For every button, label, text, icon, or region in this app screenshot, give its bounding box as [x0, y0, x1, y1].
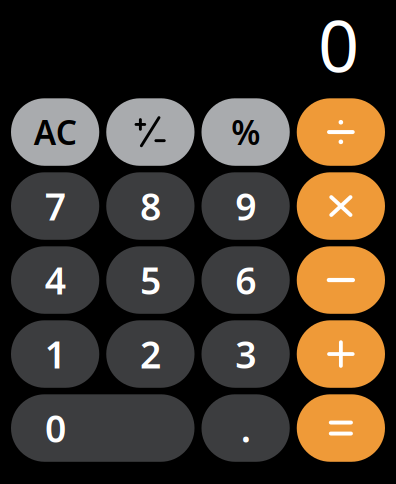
button[interactable]: Equals — [297, 394, 385, 462]
staticText: 9 — [235, 181, 256, 231]
staticText: AC — [34, 110, 77, 154]
staticText: 2 — [140, 329, 161, 379]
button[interactable]: Decimal point — [201, 394, 290, 462]
staticText: 7 — [45, 181, 66, 231]
button[interactable]: 7 — [11, 172, 99, 240]
button[interactable]: Plus — [297, 320, 385, 388]
button[interactable]: 8 — [106, 172, 194, 240]
button[interactable]: 4 — [11, 246, 99, 314]
staticText: 3 — [235, 329, 256, 379]
staticText: 5 — [140, 255, 161, 305]
button[interactable]: Plus minus — [106, 98, 194, 166]
button[interactable]: 6 — [201, 246, 290, 314]
staticText: 8 — [140, 181, 161, 231]
button[interactable]: 9 — [201, 172, 290, 240]
staticText: 6 — [235, 255, 256, 305]
button[interactable]: All clear — [11, 98, 99, 166]
button[interactable]: Percent — [201, 98, 290, 166]
button[interactable]: 2 — [106, 320, 194, 388]
button[interactable]: 5 — [106, 246, 194, 314]
button[interactable]: Minus — [297, 246, 385, 314]
staticText: . — [241, 403, 251, 453]
staticText: 1 — [45, 329, 66, 379]
button[interactable]: Divide — [297, 98, 385, 166]
button[interactable]: 3 — [201, 320, 290, 388]
staticText: 0 — [318, 0, 359, 92]
button[interactable]: 1 — [11, 320, 99, 388]
button[interactable]: 0 — [11, 394, 194, 462]
staticText: 0 — [45, 403, 66, 453]
button[interactable]: Multiply — [297, 172, 385, 240]
staticText: 4 — [45, 255, 66, 305]
staticText: % — [231, 110, 260, 154]
